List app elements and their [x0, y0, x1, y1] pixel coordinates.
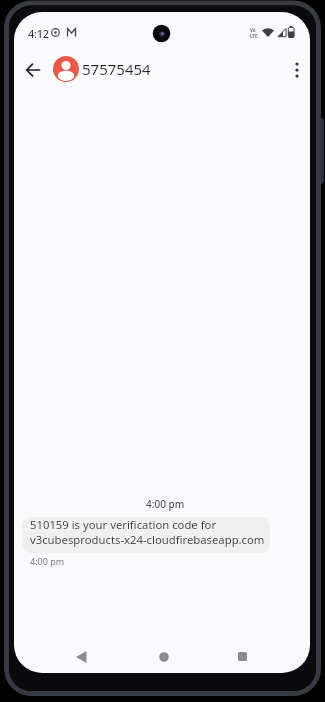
staticText: 4:12 — [28, 26, 49, 41]
button[interactable]: 57575454 — [53, 55, 151, 83]
staticText: LTE — [250, 33, 258, 39]
button[interactable] — [18, 55, 48, 85]
staticText: 4:00 pm — [30, 555, 65, 567]
staticText: v3cubesproducts-x24-cloudfirebaseapp.com — [30, 532, 265, 547]
button[interactable] — [228, 642, 257, 671]
staticText: Vo — [250, 27, 256, 33]
button[interactable] — [283, 56, 310, 84]
staticText: 510159 is your verification code for — [30, 517, 217, 532]
staticText: 57575454 — [82, 59, 151, 79]
button[interactable]: 510159 is your verification code for — [22, 517, 270, 553]
button[interactable] — [149, 642, 178, 671]
button[interactable] — [67, 642, 96, 671]
staticText: 4:00 pm — [146, 497, 185, 511]
